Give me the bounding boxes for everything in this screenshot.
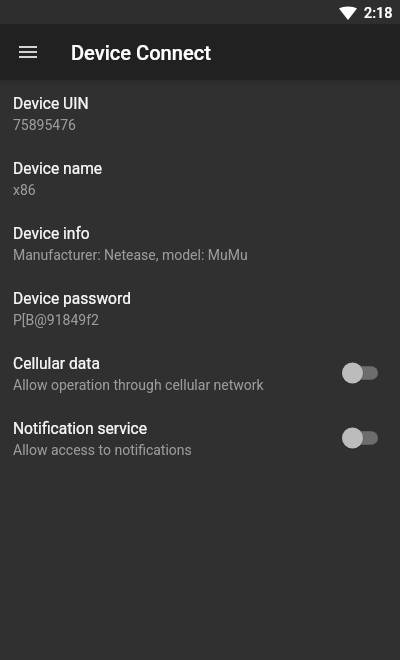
- staticText: Cellular data: [13, 355, 100, 373]
- staticText: x86: [13, 182, 36, 198]
- button[interactable]: Cellular data: [0, 340, 400, 405]
- button[interactable]: Toggle Notification service: [342, 426, 378, 450]
- staticText: Allow operation through cellular network: [13, 377, 264, 393]
- staticText: Device UIN: [13, 95, 89, 113]
- staticText: Allow access to notifications: [13, 442, 192, 458]
- staticText: Device info: [13, 225, 90, 243]
- staticText: P[B@91849f2: [13, 312, 99, 328]
- staticText: Manufacturer: Netease, model: MuMu: [13, 247, 248, 263]
- staticText: Device name: [13, 160, 103, 178]
- button[interactable]: Open navigation menu: [4, 28, 52, 76]
- button[interactable]: Device info: [0, 210, 400, 275]
- staticText: Notification service: [13, 420, 147, 438]
- button[interactable]: Device password: [0, 275, 400, 340]
- button[interactable]: Device UIN: [0, 80, 400, 145]
- button[interactable]: Notification service: [0, 405, 400, 470]
- button[interactable]: Device name: [0, 145, 400, 210]
- staticText: Device password: [13, 290, 131, 308]
- button[interactable]: Toggle Cellular data: [342, 361, 378, 385]
- staticText: Device Connect: [71, 41, 211, 65]
- staticText: 75895476: [13, 117, 76, 133]
- staticText: 2:18: [364, 5, 393, 22]
